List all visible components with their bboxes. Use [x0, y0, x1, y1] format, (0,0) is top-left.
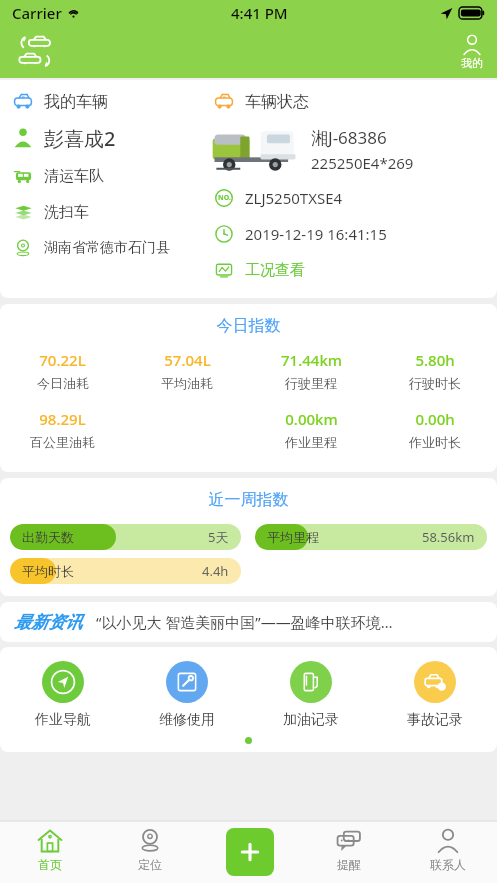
button[interactable]: 平均里程 — [255, 524, 487, 550]
staticText: 70.22L — [39, 350, 86, 370]
staticText: 湖南省常德市石门县 — [44, 239, 170, 257]
staticText: 百公里油耗 — [30, 434, 95, 450]
button[interactable]: 最新资讯 — [0, 602, 497, 642]
button[interactable]: 加油记录 — [249, 661, 373, 729]
staticText: 洗扫车 — [44, 203, 89, 222]
button[interactable]: 定位 — [100, 828, 200, 872]
button[interactable]: 提醒 — [299, 828, 398, 872]
staticText: 行驶里程 — [285, 375, 337, 391]
button[interactable]: 出勤天数 — [10, 524, 241, 550]
staticText: 工况查看 — [245, 261, 305, 280]
button[interactable]: 首页 — [0, 828, 100, 872]
staticText: 作业时长 — [409, 434, 461, 450]
staticText: 0.00km — [285, 409, 338, 429]
staticText: NO. — [218, 193, 231, 203]
staticText: 彭喜成2 — [44, 125, 116, 152]
staticText: 平均里程 — [267, 529, 319, 545]
staticText: 维修使用 — [159, 711, 215, 729]
button[interactable]: 平均时长 — [10, 558, 241, 584]
button[interactable]: 维修使用 — [125, 661, 249, 729]
button[interactable]: 事故记录 — [373, 661, 497, 729]
staticText: 湘J-68386 — [311, 126, 387, 149]
staticText: 今日油耗 — [37, 375, 89, 391]
button[interactable]: 联系人 — [398, 828, 497, 872]
staticText: 首页 — [38, 857, 62, 872]
staticText: 225250E4*269 — [311, 153, 414, 173]
staticText: 0.00h — [415, 409, 455, 429]
staticText: 加油记录 — [283, 711, 339, 729]
button[interactable]: 作业导航 — [0, 661, 125, 729]
button[interactable]: 工况查看 — [245, 261, 305, 280]
staticText: 出勤天数 — [22, 529, 74, 545]
staticText: 最新资讯 — [14, 612, 82, 633]
staticText: 事故记录 — [407, 711, 463, 729]
staticText: 车辆状态 — [245, 92, 309, 112]
staticText: 4:41 PM — [231, 3, 288, 23]
staticText: 联系人 — [430, 857, 466, 872]
staticText: 作业导航 — [35, 711, 91, 729]
staticText: 98.29L — [39, 409, 86, 429]
staticText: 近一周指数 — [10, 490, 487, 510]
staticText: 定位 — [138, 857, 162, 872]
staticText: 平均油耗 — [161, 375, 213, 391]
staticText: 今日指数 — [0, 316, 497, 336]
staticText: 作业里程 — [285, 434, 337, 450]
button[interactable]: Add — [226, 828, 274, 876]
staticText: 71.44km — [281, 350, 342, 370]
button[interactable]: 我的 — [461, 34, 483, 70]
staticText: 行驶时长 — [409, 375, 461, 391]
staticText: ZLJ5250TXSE4 — [245, 188, 343, 208]
staticText: 我的 — [461, 56, 483, 70]
staticText: 58.56km — [422, 528, 475, 546]
staticText: 57.04L — [164, 350, 211, 370]
staticText: 提醒 — [337, 857, 361, 872]
staticText: 2019-12-19 16:41:15 — [245, 224, 387, 244]
staticText: 5.80h — [415, 350, 455, 370]
button[interactable]: Switch vehicle — [14, 31, 56, 73]
staticText: “以小见大 智造美丽中国”——盈峰中联环境… — [96, 612, 393, 632]
staticText: 我的车辆 — [44, 92, 108, 112]
staticText: 4.4h — [202, 562, 229, 580]
staticText: Carrier — [12, 3, 62, 23]
staticText: 平均时长 — [22, 563, 74, 579]
staticText: 5天 — [208, 528, 229, 546]
staticText: 清运车队 — [44, 167, 104, 186]
